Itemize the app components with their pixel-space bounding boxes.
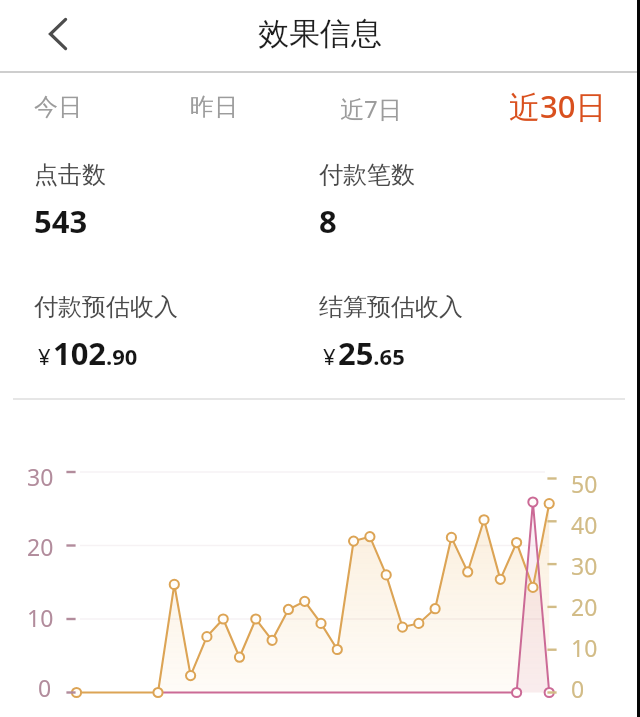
button[interactable]: 昨日 xyxy=(190,92,238,122)
staticText: 0 xyxy=(571,673,585,704)
staticText: 40 xyxy=(571,509,598,540)
button[interactable]: 近7日 xyxy=(340,92,402,125)
staticText: 结算预估收入 xyxy=(319,292,463,322)
staticText: ¥ 102.90 xyxy=(38,332,138,374)
staticText: 20 xyxy=(571,591,598,622)
staticText: 点击数 xyxy=(34,160,106,190)
staticText: 30 xyxy=(27,461,54,492)
button[interactable]: Back xyxy=(33,9,83,59)
staticText: 10 xyxy=(571,632,598,663)
staticText: 效果信息 xyxy=(258,14,382,53)
staticText: 付款笔数 xyxy=(319,160,415,190)
button[interactable]: 今日 xyxy=(34,92,82,122)
staticText: 付款预估收入 xyxy=(34,292,178,322)
staticText: 10 xyxy=(27,602,54,633)
staticText: 0 xyxy=(38,672,52,703)
staticText: 今日 xyxy=(34,92,82,122)
staticText: ¥ 25.65 xyxy=(323,332,405,374)
staticText: 30 xyxy=(571,550,598,581)
staticText: 50 xyxy=(571,468,598,499)
staticText: 昨日 xyxy=(190,92,238,122)
staticText: 8 xyxy=(319,200,337,242)
staticText: 近7日 xyxy=(340,92,402,125)
button[interactable]: 近30日 xyxy=(509,85,607,127)
staticText: 20 xyxy=(27,531,54,562)
staticText: 近30日 xyxy=(509,85,607,127)
staticText: 543 xyxy=(34,200,88,242)
